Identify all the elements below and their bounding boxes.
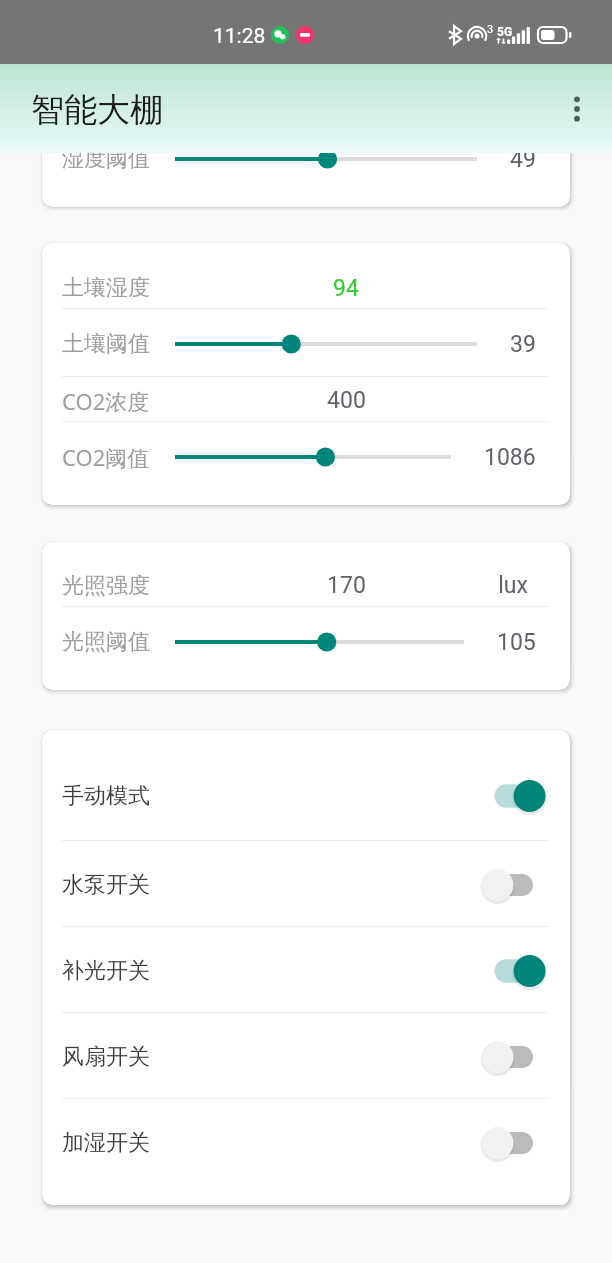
staticText: 光照阈值 <box>62 628 175 656</box>
staticText: lux <box>498 572 528 599</box>
button[interactable]: 加湿开关 <box>42 1099 570 1185</box>
staticText: 94 <box>333 275 359 302</box>
staticText: 105 <box>497 629 536 656</box>
button[interactable]: 光照强度 <box>42 562 570 607</box>
button[interactable]: 土壤湿度 <box>42 263 570 309</box>
staticText: 11:28 <box>213 24 266 49</box>
staticText: 400 <box>327 387 366 414</box>
staticText: 补光开关 <box>62 957 481 985</box>
staticText: 加湿开关 <box>62 1129 481 1157</box>
staticText: CO2阈值 <box>62 442 175 472</box>
staticText: 1086 <box>484 444 536 471</box>
staticText: 170 <box>327 572 366 599</box>
staticText: 49 <box>510 146 536 173</box>
staticText: 3 <box>487 23 494 36</box>
button[interactable]: 湿度阈值 <box>42 124 570 192</box>
staticText: 水泵开关 <box>62 871 481 899</box>
staticText: 土壤湿度 <box>62 274 150 302</box>
button[interactable]: 手动模式 <box>42 755 570 841</box>
button[interactable]: CO2阈值 <box>42 422 570 490</box>
staticText: 39 <box>510 331 536 358</box>
staticText: 湿度阈值 <box>62 145 175 173</box>
button[interactable]: 补光开关 <box>42 927 570 1013</box>
button[interactable]: More options <box>556 88 598 130</box>
staticText: 手动模式 <box>62 782 481 810</box>
button[interactable]: CO2浓度 <box>42 377 570 422</box>
staticText: 光照强度 <box>62 572 150 600</box>
button[interactable]: 风扇开关 <box>42 1013 570 1099</box>
staticText: 5G <box>497 25 513 39</box>
staticText: CO2浓度 <box>62 386 150 416</box>
staticText: 智能大棚 <box>31 89 163 131</box>
staticText: 风扇开关 <box>62 1043 481 1071</box>
button[interactable]: 光照阈值 <box>42 607 570 675</box>
staticText: 土壤阈值 <box>62 330 175 358</box>
button[interactable]: 土壤阈值 <box>42 309 570 377</box>
button[interactable]: 水泵开关 <box>42 841 570 927</box>
